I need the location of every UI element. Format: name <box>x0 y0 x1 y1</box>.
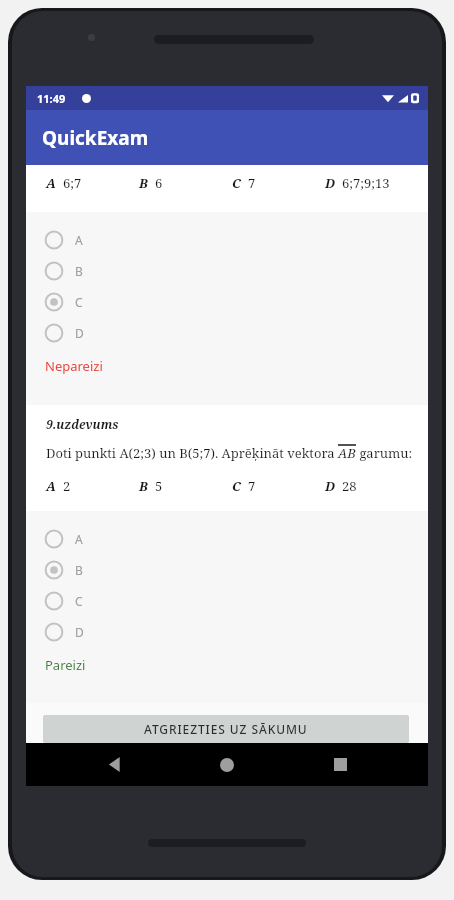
staticText: ATGRIEZTIES UZ SĀKUMU <box>144 721 308 737</box>
button[interactable]: A <box>26 224 428 255</box>
staticText: C <box>232 477 241 495</box>
staticText: QuickExam <box>42 125 149 151</box>
staticText: 28 <box>342 477 357 495</box>
button[interactable]: Recent apps <box>316 743 364 786</box>
staticText: garumu: <box>356 444 413 462</box>
staticText: C <box>232 174 241 192</box>
button[interactable]: C <box>26 585 428 616</box>
button[interactable]: B <box>26 554 428 585</box>
staticText: 6;7;9;13 <box>342 174 390 192</box>
staticText: 6;7 <box>63 174 82 192</box>
staticText: D <box>325 174 335 192</box>
staticText: C <box>75 593 83 609</box>
button[interactable]: B <box>26 255 428 286</box>
button[interactable]: Back <box>91 743 139 786</box>
staticText: 7 <box>248 174 256 192</box>
staticText: A <box>75 531 83 547</box>
button[interactable]: A <box>26 523 428 554</box>
staticText: 6 <box>155 174 163 192</box>
staticText: Doti punkti A(2;3) un B(5;7). Aprēķināt … <box>46 444 338 462</box>
staticText: B <box>75 562 83 578</box>
staticText: 2 <box>63 477 71 495</box>
button[interactable]: D <box>26 317 428 348</box>
staticText: 9.uzdevums <box>46 416 119 432</box>
staticText: B <box>75 263 83 279</box>
button[interactable]: ATGRIEZTIES UZ SĀKUMU <box>43 715 409 743</box>
button[interactable]: Home <box>203 743 251 786</box>
staticText: A <box>75 232 83 248</box>
staticText: B <box>139 174 148 192</box>
staticText: D <box>75 325 84 341</box>
staticText: A <box>46 174 56 192</box>
staticText: B <box>139 477 148 495</box>
staticText: Pareizi <box>45 656 86 674</box>
staticText: 11:49 <box>37 91 66 106</box>
button[interactable]: C <box>26 286 428 317</box>
staticText: A <box>46 477 56 495</box>
staticText: D <box>75 624 84 640</box>
staticText: 7 <box>248 477 256 495</box>
button[interactable]: D <box>26 616 428 647</box>
staticText: D <box>325 477 335 495</box>
staticText: AB <box>338 444 356 462</box>
staticText: C <box>75 294 83 310</box>
staticText: Nepareizi <box>45 357 103 375</box>
staticText: 5 <box>155 477 163 495</box>
